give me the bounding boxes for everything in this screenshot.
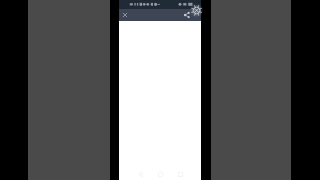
- button[interactable]: Recents: [174, 168, 187, 180]
- button[interactable]: Share: [182, 10, 192, 20]
- button[interactable]: Close: [120, 10, 130, 20]
